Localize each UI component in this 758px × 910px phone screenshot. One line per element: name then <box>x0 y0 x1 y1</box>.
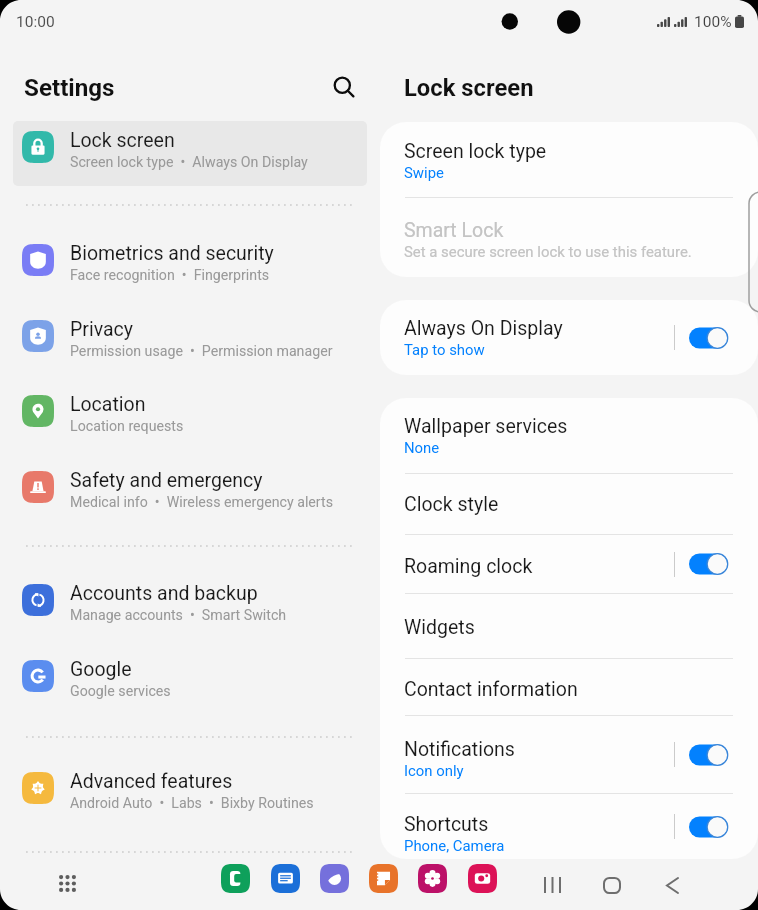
button[interactable]: Accounts and backup <box>13 574 367 639</box>
button[interactable]: Location <box>13 385 367 450</box>
staticText: None <box>404 439 440 456</box>
staticText: Screen lock type • Always On Display <box>70 154 308 171</box>
staticText: Wallpaper services <box>404 415 568 438</box>
button[interactable]: Home <box>596 869 628 901</box>
staticText: Clock style <box>404 493 499 516</box>
button[interactable] <box>689 816 728 838</box>
button[interactable]: gallery <box>418 864 447 893</box>
staticText: 100% <box>694 13 732 31</box>
button[interactable]: Lock screen <box>13 121 367 186</box>
staticText: Screen lock type <box>404 140 547 163</box>
staticText: Location requests <box>70 418 184 435</box>
staticText: Permission usage • Permission manager <box>70 343 333 360</box>
staticText: Contact information <box>404 678 578 701</box>
staticText: Advanced features <box>70 770 233 793</box>
staticText: Lock screen <box>404 74 534 102</box>
button[interactable]: Contact information <box>380 659 758 715</box>
button[interactable]: Biometrics and security <box>13 234 367 299</box>
staticText: Phone, Camera <box>404 837 505 854</box>
button[interactable]: phone <box>221 864 250 893</box>
staticText: Set a secure screen lock to use this fea… <box>404 243 692 260</box>
staticText: Shortcuts <box>404 813 489 836</box>
button[interactable]: internet <box>320 864 349 893</box>
button[interactable]: Wallpaper services <box>380 398 758 473</box>
button[interactable] <box>689 327 728 349</box>
button[interactable]: Roaming clock <box>380 535 758 593</box>
button[interactable]: Back <box>656 869 688 901</box>
staticText: Android Auto • Labs • Bixby Routines <box>70 795 314 812</box>
staticText: Swipe <box>404 164 444 181</box>
staticText: Settings <box>24 74 115 102</box>
button[interactable] <box>689 553 728 575</box>
button[interactable]: Notifications <box>380 716 758 793</box>
button[interactable]: Clock style <box>380 474 758 534</box>
button[interactable]: Apps <box>51 867 83 899</box>
staticText: Manage accounts • Smart Switch <box>70 607 287 624</box>
staticText: Safety and emergency <box>70 469 263 492</box>
button[interactable]: Advanced features <box>13 762 367 827</box>
button[interactable]: Safety and emergency <box>13 461 367 526</box>
staticText: Lock screen <box>70 129 175 152</box>
staticText: Privacy <box>70 318 133 341</box>
staticText: Smart Lock <box>404 219 504 242</box>
staticText: Google <box>70 658 132 681</box>
button[interactable]: Always On Display <box>380 300 758 375</box>
button[interactable]: Smart Lock <box>380 198 758 277</box>
staticText: Icon only <box>404 762 464 779</box>
staticText: 10:00 <box>16 13 55 31</box>
button[interactable]: Screen lock type <box>380 122 758 197</box>
staticText: Medical info • Wireless emergency alerts <box>70 494 333 511</box>
button[interactable]: messages <box>271 864 300 893</box>
button[interactable]: Widgets <box>380 594 758 658</box>
button[interactable]: notes <box>369 864 398 893</box>
staticText: Biometrics and security <box>70 242 274 265</box>
staticText: Always On Display <box>404 317 563 340</box>
button[interactable]: Shortcuts <box>380 794 758 859</box>
staticText: Google services <box>70 683 171 700</box>
staticText: Accounts and backup <box>70 582 258 605</box>
staticText: Face recognition • Fingerprints <box>70 267 270 284</box>
button[interactable] <box>689 744 728 766</box>
staticText: Location <box>70 393 146 416</box>
button[interactable]: Privacy <box>13 310 367 375</box>
button[interactable]: Google <box>13 650 367 715</box>
staticText: Roaming clock <box>404 555 533 578</box>
staticText: Notifications <box>404 738 515 761</box>
staticText: Tap to show <box>404 341 485 358</box>
button[interactable]: camera <box>468 864 497 893</box>
button[interactable]: Search <box>326 69 362 105</box>
button[interactable]: Recents <box>536 869 568 901</box>
staticText: Widgets <box>404 616 475 639</box>
